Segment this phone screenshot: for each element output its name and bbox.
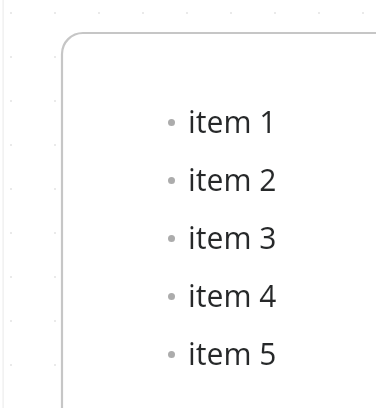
staticText: item 2 <box>188 159 277 200</box>
other: bullet <box>168 351 175 358</box>
other: bullet <box>168 293 175 300</box>
staticText: item 5 <box>188 333 277 374</box>
staticText: item 3 <box>188 217 277 258</box>
other: bullet <box>168 119 175 126</box>
staticText: item 4 <box>188 275 277 316</box>
staticText: item 1 <box>188 101 277 142</box>
button[interactable]: bullet <box>160 150 310 208</box>
button[interactable]: bullet <box>160 324 310 382</box>
other: bullet <box>168 235 175 242</box>
button[interactable]: bullet <box>160 92 310 150</box>
other: bullet <box>168 177 175 184</box>
button[interactable]: bullet <box>160 266 310 324</box>
button[interactable]: bullet <box>160 208 310 266</box>
